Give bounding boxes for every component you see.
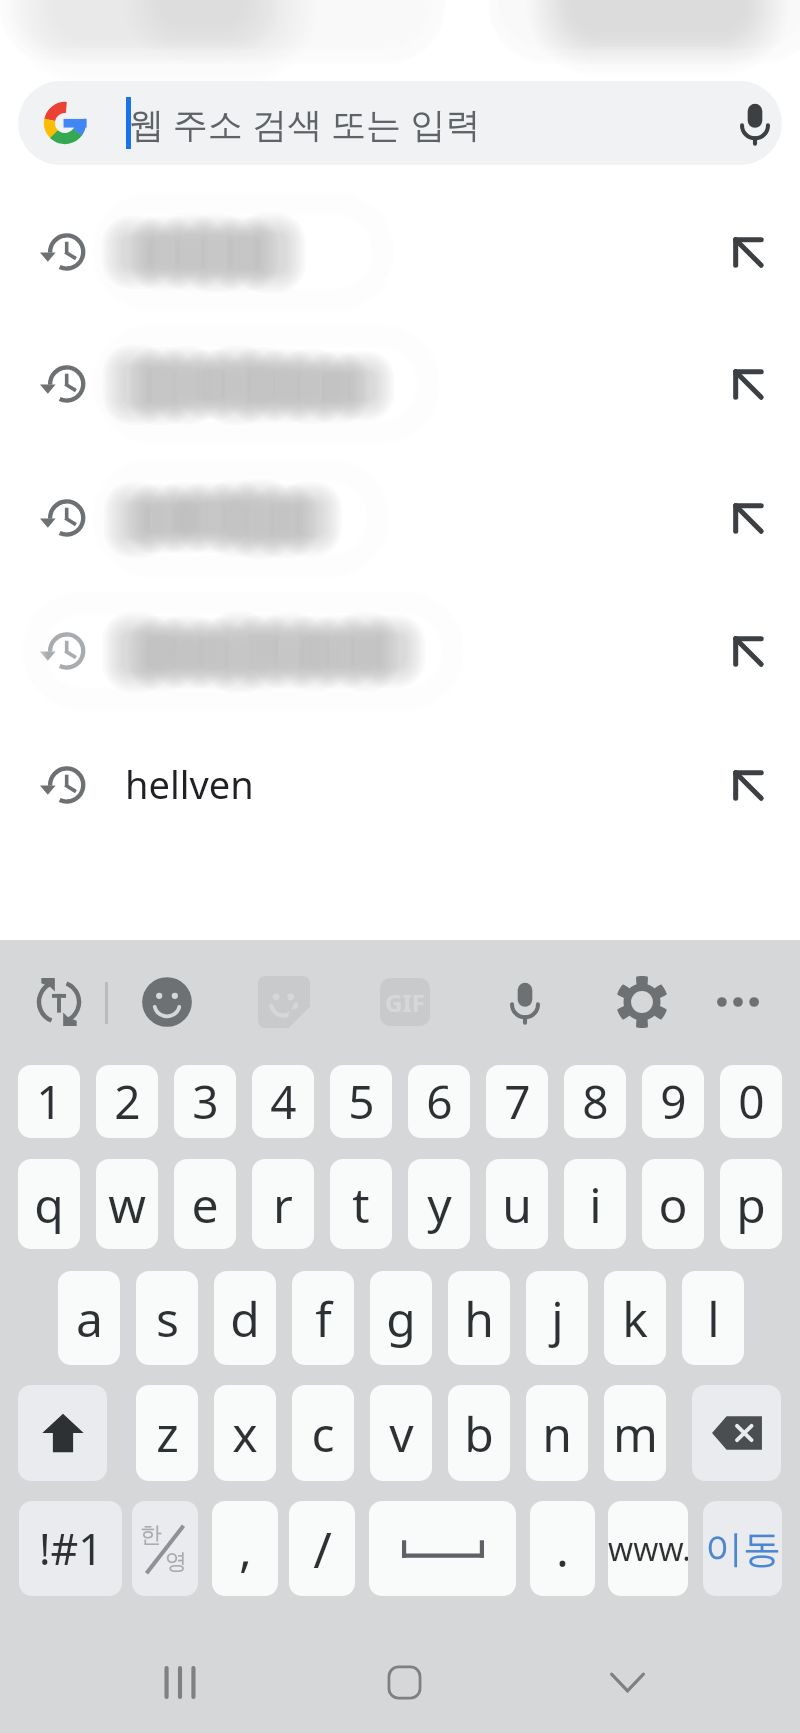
staticText: k: [622, 1286, 648, 1351]
staticText: v: [389, 1401, 414, 1466]
button[interactable]: 9: [642, 1065, 704, 1138]
button[interactable]: 0: [720, 1065, 782, 1138]
staticText: 3: [192, 1070, 219, 1133]
button[interactable]: Space: [369, 1501, 516, 1596]
button[interactable]: f: [292, 1271, 354, 1365]
staticText: p: [736, 1172, 766, 1237]
staticText: !#1: [39, 1519, 103, 1578]
button[interactable]: Stickers: [255, 973, 313, 1031]
button[interactable]: Language: [132, 1501, 198, 1596]
staticText: /: [313, 1515, 332, 1583]
button[interactable]: r: [252, 1159, 314, 1249]
staticText: t: [352, 1172, 370, 1237]
button[interactable]: More options: [709, 973, 767, 1031]
button[interactable]: v: [370, 1385, 432, 1481]
button[interactable]: /: [289, 1501, 355, 1596]
button[interactable]: Backspace: [692, 1385, 781, 1481]
button[interactable]: 1: [18, 1065, 80, 1138]
staticText: 9: [660, 1070, 687, 1133]
button[interactable]: www.: [608, 1501, 688, 1596]
button[interactable]: .: [530, 1501, 595, 1596]
staticText: 8: [582, 1070, 609, 1133]
staticText: b: [464, 1401, 494, 1466]
staticText: z: [156, 1401, 179, 1466]
button[interactable]: [0, 318, 800, 451]
button[interactable]: y: [408, 1159, 470, 1249]
button[interactable]: o: [642, 1159, 704, 1249]
staticText: s: [156, 1286, 179, 1351]
staticText: c: [311, 1401, 335, 1466]
button[interactable]: Shift: [18, 1385, 107, 1481]
button[interactable]: 6: [408, 1065, 470, 1138]
button[interactable]: q: [18, 1159, 80, 1249]
button[interactable]: 4: [252, 1065, 314, 1138]
button[interactable]: w: [96, 1159, 158, 1249]
button[interactable]: Recent apps: [140, 1642, 220, 1722]
staticText: o: [658, 1172, 688, 1237]
button[interactable]: b: [448, 1385, 510, 1481]
staticText: 한: [140, 1521, 162, 1549]
button[interactable]: 2: [96, 1065, 158, 1138]
button[interactable]: s: [136, 1271, 198, 1365]
staticText: .: [556, 1516, 569, 1581]
staticText: w: [108, 1172, 146, 1237]
button[interactable]: !#1: [19, 1501, 122, 1596]
button[interactable]: 3: [174, 1065, 236, 1138]
button[interactable]: hellven: [0, 719, 800, 852]
staticText: m: [613, 1401, 658, 1466]
staticText: n: [542, 1401, 572, 1466]
button[interactable]: p: [720, 1159, 782, 1249]
button[interactable]: z: [136, 1385, 198, 1481]
button[interactable]: Home: [364, 1642, 444, 1722]
button[interactable]: ,: [212, 1501, 278, 1596]
staticText: 1: [36, 1070, 63, 1133]
staticText: 2: [114, 1070, 141, 1133]
button[interactable]: l: [682, 1271, 744, 1365]
button[interactable]: Emoji: [138, 973, 196, 1031]
staticText: u: [502, 1172, 532, 1237]
staticText: x: [232, 1401, 258, 1466]
staticText: 6: [426, 1070, 453, 1133]
staticText: hellven: [125, 758, 254, 810]
button[interactable]: Translate: [30, 973, 88, 1031]
button[interactable]: i: [564, 1159, 626, 1249]
staticText: y: [427, 1172, 452, 1237]
button[interactable]: h: [448, 1271, 510, 1365]
staticText: l: [707, 1286, 720, 1351]
staticText: a: [76, 1286, 103, 1351]
button[interactable]: a: [58, 1271, 120, 1365]
button[interactable]: 5: [330, 1065, 392, 1138]
button[interactable]: GIF: [376, 973, 434, 1031]
staticText: 7: [504, 1070, 531, 1133]
button[interactable]: g: [370, 1271, 432, 1365]
button[interactable]: 8: [564, 1065, 626, 1138]
staticText: 웹 주소 검색 또는 입력: [129, 100, 481, 148]
button[interactable]: 웹 주소 검색 또는 입력: [18, 81, 782, 165]
button[interactable]: Voice input: [496, 973, 554, 1031]
button[interactable]: n: [526, 1385, 588, 1481]
button[interactable]: Voice search: [720, 88, 782, 158]
button[interactable]: j: [526, 1271, 588, 1365]
button[interactable]: 7: [486, 1065, 548, 1138]
button[interactable]: [0, 452, 800, 585]
button[interactable]: c: [292, 1385, 354, 1481]
button[interactable]: k: [604, 1271, 666, 1365]
staticText: d: [230, 1286, 260, 1351]
staticText: f: [315, 1286, 332, 1351]
button[interactable]: e: [174, 1159, 236, 1249]
button[interactable]: u: [486, 1159, 548, 1249]
staticText: GIF: [385, 986, 425, 1019]
button[interactable]: [0, 186, 800, 319]
button[interactable]: Settings: [613, 973, 671, 1031]
button[interactable]: x: [214, 1385, 276, 1481]
button[interactable]: t: [330, 1159, 392, 1249]
staticText: j: [551, 1286, 564, 1351]
button[interactable]: [0, 585, 800, 718]
button[interactable]: m: [604, 1385, 666, 1481]
staticText: 이동: [705, 1525, 781, 1573]
button[interactable]: Hide keyboard: [587, 1642, 667, 1722]
button[interactable]: 이동: [703, 1501, 782, 1596]
staticText: h: [464, 1286, 494, 1351]
button[interactable]: d: [214, 1271, 276, 1365]
staticText: q: [34, 1172, 64, 1237]
